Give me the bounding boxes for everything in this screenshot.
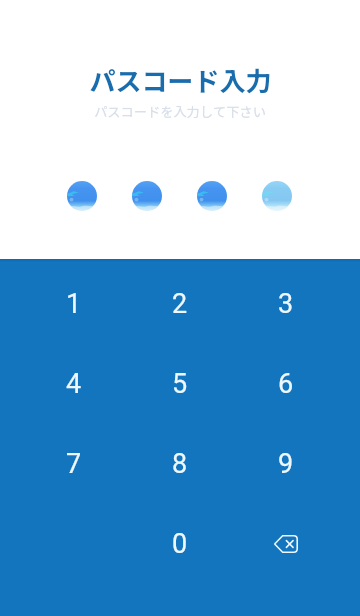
button[interactable]: 1 [0,264,120,344]
staticText: 7 [66,448,82,480]
staticText: 0 [172,528,188,560]
staticText: 8 [172,448,188,480]
staticText: 2 [172,288,188,320]
staticText: 1 [66,288,82,320]
staticText: 3 [278,288,294,320]
button[interactable]: 3 [240,264,360,344]
button[interactable]: 6 [240,344,360,424]
staticText: パスコード入力 [89,61,272,99]
staticText: 5 [172,368,188,400]
staticText: 4 [66,368,82,400]
button[interactable]: 7 [0,424,120,504]
button[interactable]: Delete last digit [240,504,360,584]
button[interactable]: 2 [120,264,240,344]
button[interactable]: 0 [120,504,240,584]
button[interactable]: 8 [120,424,240,504]
staticText: 9 [278,448,294,480]
staticText: 6 [278,368,294,400]
button[interactable]: 5 [120,344,240,424]
button[interactable]: 9 [240,424,360,504]
staticText: パスコードを入力して下さい [94,102,266,121]
button[interactable]: 4 [0,344,120,424]
